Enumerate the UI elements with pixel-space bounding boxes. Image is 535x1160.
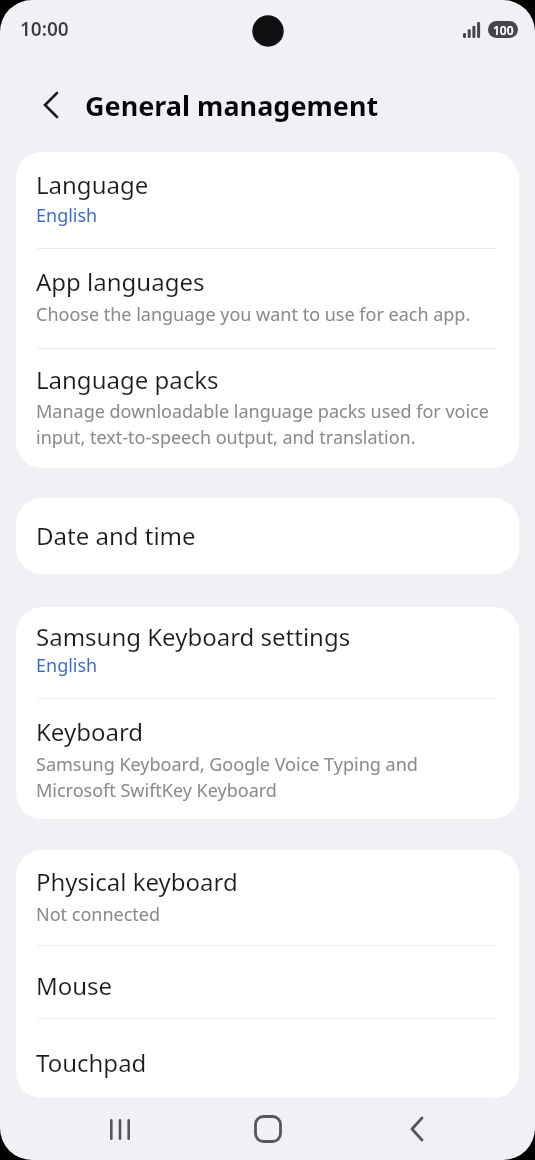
staticText: Manage downloadable language packs used … bbox=[36, 399, 489, 449]
button[interactable]: Language packs bbox=[16, 349, 519, 468]
staticText: Language bbox=[36, 168, 149, 201]
staticText: Keyboard bbox=[36, 715, 144, 748]
staticText: Choose the language you want to use for … bbox=[36, 302, 471, 327]
button[interactable] bbox=[98, 1107, 142, 1151]
button[interactable]: Date and time bbox=[16, 498, 519, 574]
staticText: Language packs bbox=[36, 363, 219, 396]
staticText: Samsung Keyboard settings bbox=[36, 620, 351, 653]
button[interactable]: Keyboard bbox=[16, 699, 519, 819]
button[interactable] bbox=[395, 1107, 439, 1151]
button[interactable] bbox=[28, 83, 72, 127]
button[interactable]: App languages bbox=[16, 249, 519, 348]
staticText: Samsung Keyboard, Google Voice Typing an… bbox=[36, 752, 418, 802]
staticText: Mouse bbox=[36, 969, 113, 1002]
staticText: English bbox=[36, 203, 98, 228]
staticText: Date and time bbox=[36, 519, 196, 552]
button[interactable] bbox=[246, 1107, 290, 1151]
button[interactable]: Touchpad bbox=[16, 1019, 519, 1098]
staticText: 100 bbox=[493, 22, 514, 38]
button[interactable]: Mouse bbox=[16, 946, 519, 1018]
staticText: Physical keyboard bbox=[36, 865, 238, 898]
staticText: 10:00 bbox=[20, 16, 69, 42]
button[interactable]: Language bbox=[16, 152, 519, 248]
staticText: App languages bbox=[36, 265, 205, 298]
staticText: General management bbox=[85, 87, 379, 124]
button[interactable]: Physical keyboard bbox=[16, 850, 519, 945]
staticText: Touchpad bbox=[36, 1046, 147, 1079]
staticText: Not connected bbox=[36, 902, 161, 927]
staticText: English bbox=[36, 653, 98, 678]
button[interactable]: Samsung Keyboard settings bbox=[16, 607, 519, 698]
